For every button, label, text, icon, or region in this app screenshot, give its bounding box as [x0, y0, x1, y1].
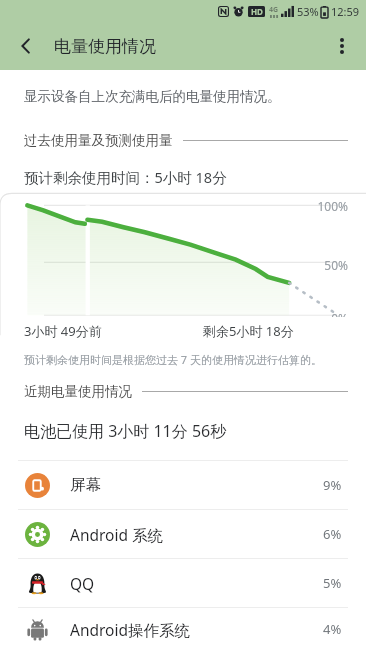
- button[interactable]: 屏幕: [0, 461, 366, 509]
- staticText: 6%: [323, 525, 342, 543]
- staticText: 53%: [297, 4, 319, 19]
- staticText: Android操作系统: [70, 619, 191, 640]
- button[interactable]: Android操作系统: [0, 608, 366, 650]
- staticText: 5%: [323, 574, 342, 592]
- staticText: 4%: [323, 620, 342, 638]
- button[interactable]: Back: [6, 26, 46, 66]
- button[interactable]: QQ: [0, 559, 366, 607]
- staticText: 屏幕: [70, 475, 101, 495]
- staticText: 50%: [324, 257, 348, 273]
- staticText: HD: [251, 6, 263, 17]
- staticText: 9%: [323, 476, 342, 494]
- staticText: 显示设备自上次充满电后的电量使用情况。: [24, 88, 281, 105]
- staticText: Android 系统: [70, 524, 164, 545]
- staticText: 电量使用情况: [54, 36, 156, 57]
- staticText: 预计剩余使用时间是根据您过去 7 天的使用情况进行估算的。: [24, 352, 323, 367]
- staticText: QQ: [70, 573, 95, 594]
- button[interactable]: More options: [322, 26, 362, 66]
- staticText: 12:59: [331, 4, 360, 19]
- staticText: 近期电量使用情况: [24, 383, 132, 400]
- staticText: 过去使用量及预测使用量: [24, 132, 173, 149]
- button[interactable]: Android 系统: [0, 510, 366, 558]
- staticText: 3小时 49分前: [24, 322, 102, 340]
- staticText: 100%: [317, 198, 348, 214]
- staticText: 4G: [269, 5, 279, 15]
- staticText: 预计剩余使用时间：5小时 18分: [24, 167, 227, 187]
- staticText: 0%: [331, 310, 348, 317]
- staticText: 电池已使用 3小时 11分 56秒: [24, 420, 227, 442]
- staticText: 剩余5小时 18分: [203, 322, 294, 340]
